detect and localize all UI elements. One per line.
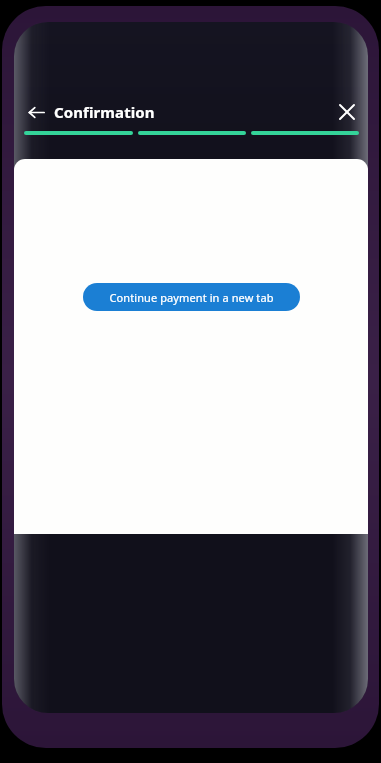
button[interactable]: Close: [331, 96, 363, 128]
button[interactable]: Continue payment in a new tab: [83, 283, 300, 311]
staticText: Confirmation: [54, 102, 155, 122]
staticText: Continue payment in a new tab: [109, 290, 274, 305]
button[interactable]: Back: [20, 96, 52, 128]
